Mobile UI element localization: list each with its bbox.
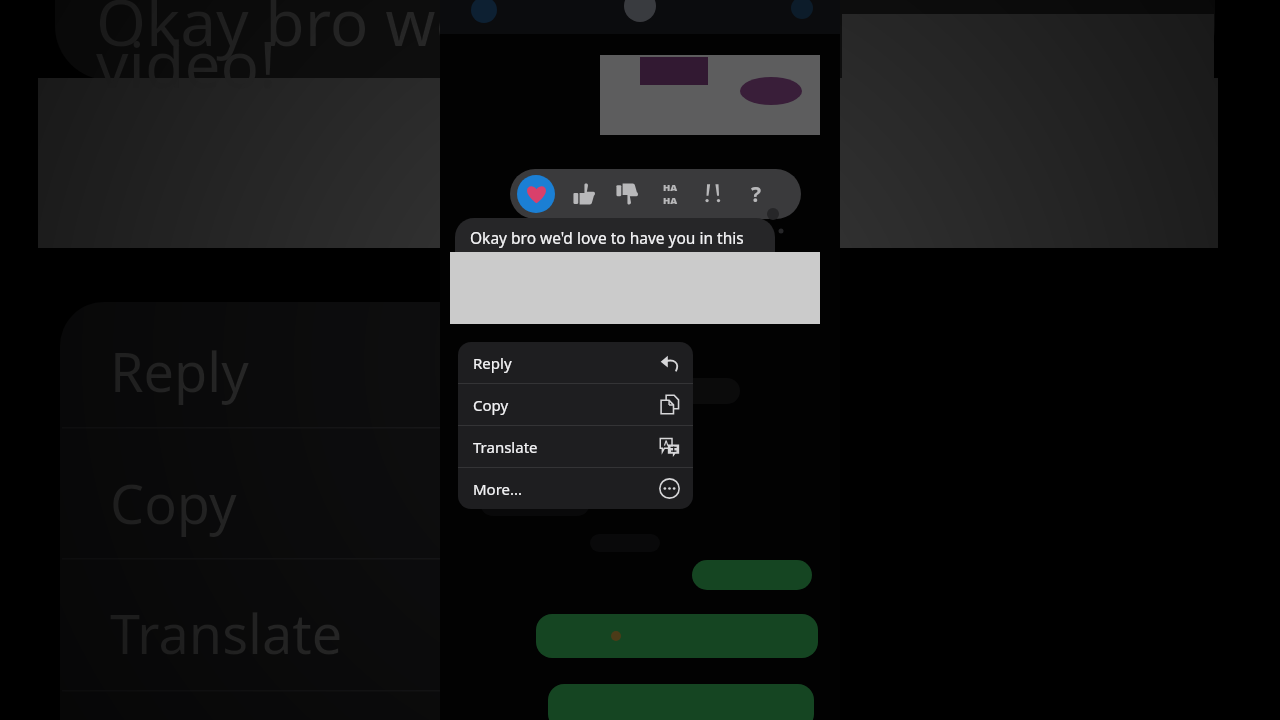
staticText: More... [473, 479, 523, 499]
staticText: Okay bro we'd love to have you in this v… [470, 227, 760, 268]
button[interactable]: Thumbs down [609, 176, 645, 212]
staticText: ? [751, 180, 762, 209]
staticText: Okay bro we'd [96, 0, 521, 65]
staticText: Copy [473, 395, 509, 415]
staticText: HA [663, 181, 678, 194]
staticText: Reply [110, 334, 249, 408]
staticText: Translate [473, 437, 538, 457]
button[interactable]: Love reaction [517, 175, 555, 213]
button[interactable]: Haha reaction [652, 176, 688, 212]
button[interactable]: Question reaction [738, 176, 774, 212]
staticText: Reply [473, 353, 512, 373]
button[interactable]: Exclamation reaction [695, 176, 731, 212]
button[interactable]: Thumbs up [566, 176, 602, 212]
staticText: HA [663, 194, 678, 207]
button[interactable]: Reply [458, 342, 693, 383]
button[interactable]: Translate [458, 426, 693, 467]
staticText: video! [96, 20, 277, 107]
button[interactable]: More... [458, 468, 693, 509]
staticText: Copy [110, 466, 237, 540]
button[interactable]: Copy [458, 384, 693, 425]
staticText: Translate [110, 596, 343, 670]
button[interactable]: Okay bro we'd love to have you in this v… [455, 218, 775, 277]
